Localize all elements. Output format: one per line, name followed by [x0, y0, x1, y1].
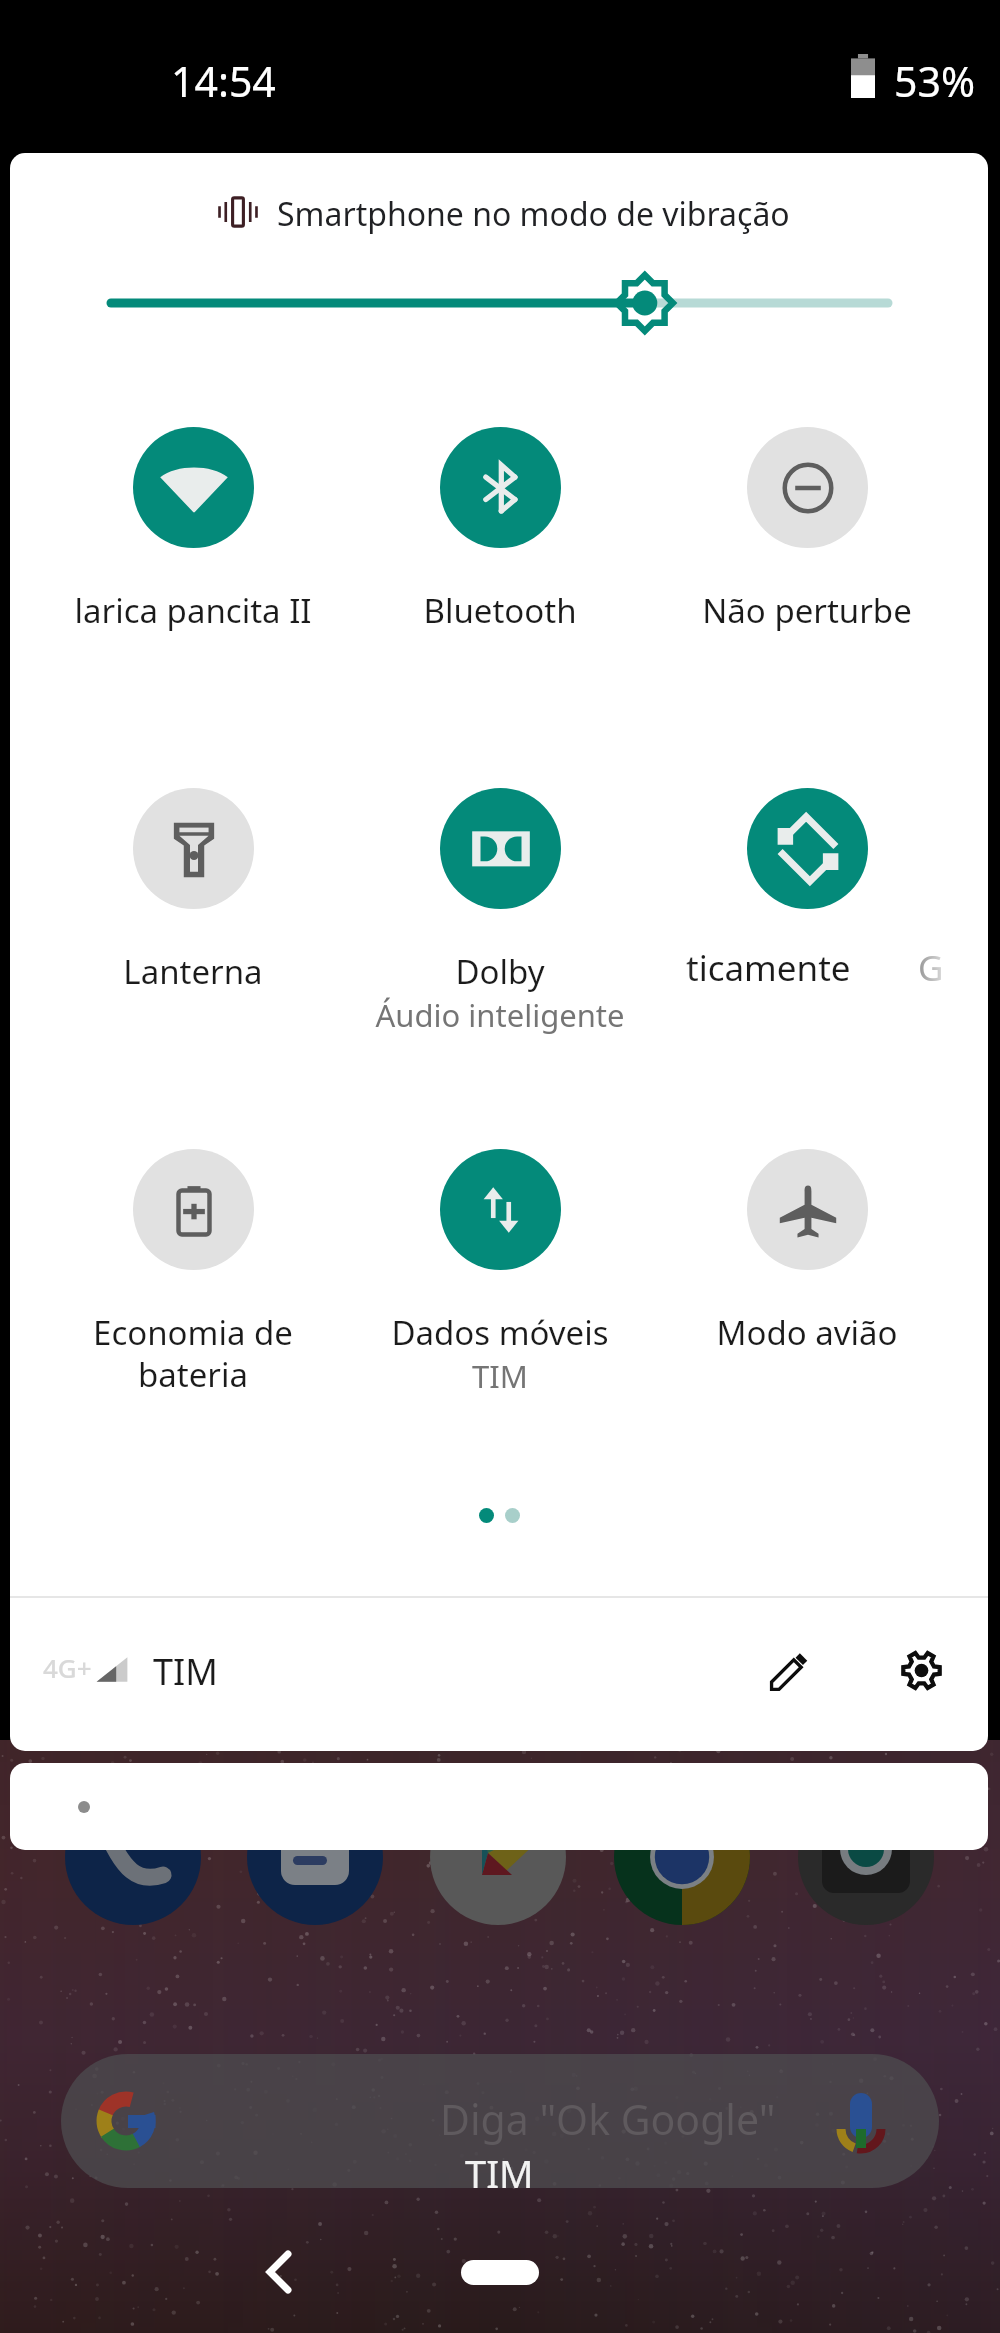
button[interactable]: Bluetooth	[350, 415, 650, 675]
staticText: Bluetooth	[423, 588, 577, 633]
staticText: Não perturbe	[702, 588, 912, 633]
button[interactable]: Dolby	[350, 776, 650, 1036]
staticText: Modo avião	[716, 1310, 898, 1355]
staticText: Economia de bateria	[93, 1310, 293, 1397]
staticText: Áudio inteligente	[375, 994, 625, 1036]
staticText: Dados móveis	[391, 1310, 609, 1355]
button[interactable]: Dados móveis	[350, 1137, 650, 1397]
button[interactable]	[10, 1763, 988, 1850]
staticText: Lanterna	[123, 949, 263, 994]
button[interactable]: Settings	[879, 1628, 963, 1712]
staticText: Smartphone no modo de vibração	[277, 192, 790, 236]
button[interactable]: Não perturbe	[657, 415, 957, 675]
staticText: TIM	[472, 1355, 528, 1397]
staticText: Diga "Ok Google"	[440, 2091, 776, 2147]
staticText: 4G+	[43, 1650, 92, 1685]
button[interactable]: ticamente	[657, 776, 957, 1036]
staticText: Dolby	[455, 949, 545, 994]
staticText: larica pancita II	[74, 588, 312, 633]
staticText: TIM	[465, 2147, 534, 2188]
button[interactable]: Diga "Ok Google"	[61, 2054, 939, 2188]
button[interactable]: Lanterna	[43, 776, 343, 1036]
button[interactable]: larica pancita II	[43, 415, 343, 675]
staticText: 53%	[894, 53, 975, 109]
button[interactable]: Edit quick settings	[747, 1629, 831, 1713]
staticText: ticamente	[686, 944, 851, 992]
staticText: G	[918, 944, 944, 992]
staticText: 14:54	[171, 53, 276, 109]
staticText: TIM	[153, 1647, 218, 1696]
button[interactable]: Economia de bateria	[43, 1137, 343, 1397]
button[interactable]: Modo avião	[657, 1137, 957, 1397]
